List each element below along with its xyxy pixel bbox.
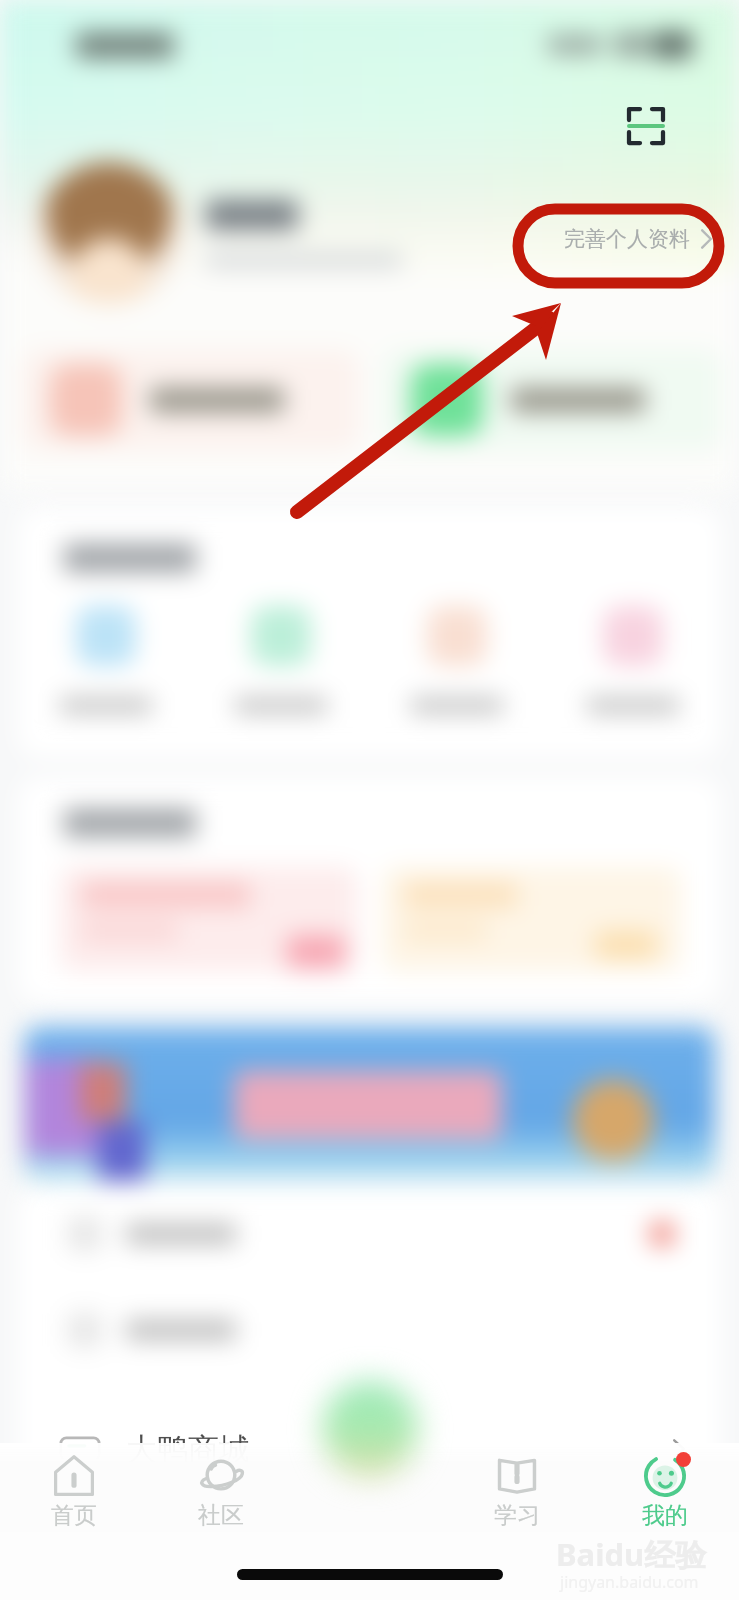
staticText: jingyan.baidu.com (560, 1571, 699, 1593)
staticText: 首页 (51, 1501, 97, 1530)
staticText: 我的 (642, 1501, 688, 1530)
button[interactable]: 大鸭商城 (60, 1414, 691, 1484)
button[interactable] (68, 1186, 675, 1282)
button[interactable]: 学习 (443, 1443, 591, 1547)
button[interactable] (193, 606, 369, 713)
button[interactable]: Create post (322, 1381, 418, 1477)
button[interactable]: 首页 (0, 1443, 147, 1547)
button[interactable] (383, 867, 681, 971)
button[interactable]: 完善个人资料 (564, 226, 718, 252)
button[interactable] (369, 606, 545, 713)
button[interactable] (18, 606, 193, 713)
staticText: 大鸭商城 (126, 1430, 250, 1469)
button[interactable] (545, 606, 721, 713)
button[interactable] (60, 867, 357, 971)
button[interactable]: 社区 (147, 1443, 295, 1547)
staticText: 社区 (198, 1501, 244, 1530)
button[interactable]: Profile avatar (38, 162, 180, 304)
button[interactable] (68, 1282, 675, 1378)
button[interactable] (50, 350, 349, 450)
staticText: 完善个人资料 (564, 226, 690, 252)
staticText: 学习 (494, 1501, 540, 1530)
button[interactable]: 我的 (591, 1443, 739, 1547)
button[interactable] (411, 350, 711, 450)
button[interactable] (24, 1027, 715, 1182)
button[interactable]: Scan QR code (620, 100, 672, 152)
staticText: Baidu经验 (556, 1533, 707, 1575)
